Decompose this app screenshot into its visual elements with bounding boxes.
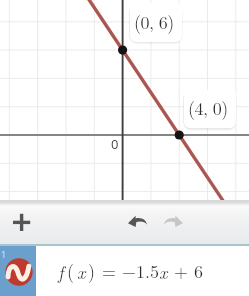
button[interactable]: f: [36, 246, 249, 296]
staticText: (: [67, 258, 75, 284]
button[interactable]: Undo: [128, 214, 147, 227]
button[interactable]: Redo: [164, 214, 183, 227]
button[interactable]: 1: [0, 246, 36, 296]
button[interactable]: (4, 0): [184, 90, 236, 128]
button[interactable]: Add expression: [8, 208, 36, 236]
staticText: x: [77, 259, 86, 284]
staticText: (4, 0): [188, 95, 228, 121]
staticText: 0: [111, 135, 119, 153]
staticText: f: [58, 259, 64, 284]
staticText: ): [88, 258, 96, 284]
staticText: + 6: [168, 258, 203, 284]
button[interactable]: (0, 6): [130, 3, 182, 42]
staticText: = −1.5: [96, 258, 159, 284]
staticText: x: [159, 259, 168, 284]
staticText: (0, 6): [134, 9, 174, 35]
staticText: 1: [1, 248, 7, 260]
